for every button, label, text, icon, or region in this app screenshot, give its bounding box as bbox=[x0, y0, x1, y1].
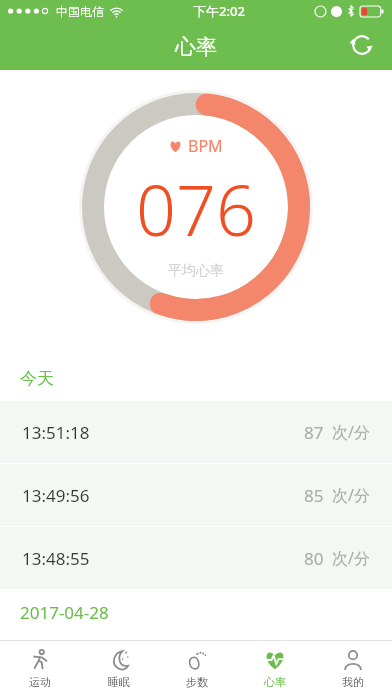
staticText: 睡眠 bbox=[108, 675, 130, 689]
staticText: 次/分 bbox=[332, 547, 370, 569]
staticText: 运动 bbox=[29, 675, 51, 689]
staticText: 我的 bbox=[342, 675, 364, 689]
staticText: 心率 bbox=[175, 34, 217, 60]
button[interactable]: 13:48:55 bbox=[0, 527, 392, 589]
staticText: 2017-04-28 bbox=[20, 601, 109, 624]
button[interactable]: 睡眠 bbox=[79, 641, 158, 696]
staticText: 次/分 bbox=[332, 484, 370, 506]
button[interactable]: Refresh bbox=[346, 29, 378, 61]
staticText: 平均心率 bbox=[168, 262, 224, 280]
staticText: 下午2:02 bbox=[193, 2, 245, 20]
staticText: BPM bbox=[188, 135, 223, 157]
staticText: 13:48:55 bbox=[22, 547, 90, 570]
button[interactable]: 13:49:56 bbox=[0, 464, 392, 526]
staticText: 中国电信 bbox=[56, 4, 104, 19]
button[interactable]: 运动 bbox=[0, 641, 79, 696]
staticText: 80 bbox=[304, 547, 324, 570]
staticText: 076 bbox=[136, 161, 256, 256]
staticText: 心率 bbox=[264, 675, 286, 689]
button[interactable]: 我的 bbox=[314, 641, 392, 696]
staticText: 步数 bbox=[186, 675, 208, 689]
staticText: 85 bbox=[304, 484, 324, 507]
button[interactable]: 13:51:18 bbox=[0, 401, 392, 463]
button[interactable]: 步数 bbox=[158, 641, 236, 696]
staticText: 次/分 bbox=[332, 421, 370, 443]
staticText: 今天 bbox=[20, 368, 54, 389]
staticText: 87 bbox=[304, 421, 324, 444]
button[interactable]: 心率 bbox=[236, 641, 314, 696]
staticText: 13:51:18 bbox=[22, 421, 90, 444]
staticText: 13:49:56 bbox=[22, 484, 90, 507]
